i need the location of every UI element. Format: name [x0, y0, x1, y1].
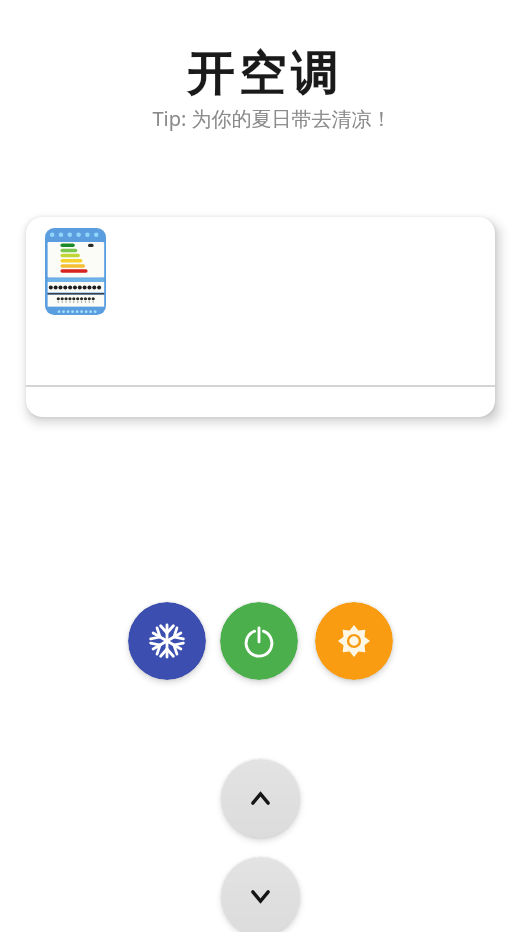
button[interactable] [26, 217, 495, 417]
button[interactable]: Power [220, 602, 298, 680]
staticText: 开空调 [184, 45, 340, 104]
button[interactable]: Temperature up [221, 759, 300, 838]
button[interactable]: Temperature down [221, 857, 300, 932]
staticText: Tip: 为你的夏日带去清凉！ [152, 105, 392, 132]
button[interactable]: Heat mode [315, 602, 393, 680]
button[interactable]: Cool mode [128, 602, 206, 680]
